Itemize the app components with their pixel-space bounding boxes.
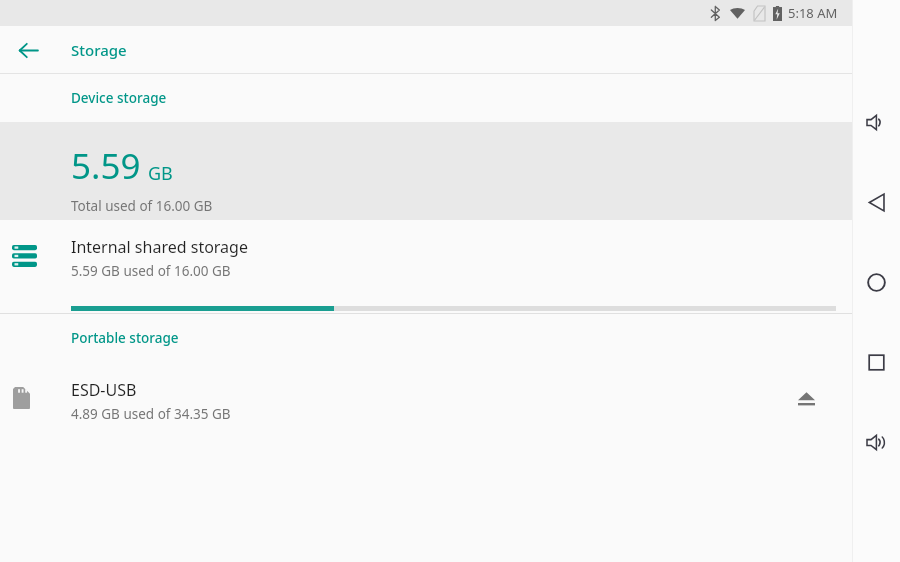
- button[interactable]: Back: [8, 30, 48, 70]
- button[interactable]: Back: [852, 180, 900, 224]
- button[interactable]: Internal shared storage: [0, 220, 852, 313]
- staticText: Internal shared storage: [71, 236, 248, 258]
- staticText: 4.89 GB used of 34.35 GB: [71, 405, 231, 423]
- staticText: GB: [148, 161, 173, 186]
- staticText: 5.59: [71, 142, 141, 190]
- staticText: 5:18 AM: [788, 4, 838, 22]
- staticText: Total used of 16.00 GB: [71, 197, 213, 215]
- button[interactable]: Volume up: [852, 420, 900, 464]
- button[interactable]: ESD-USB: [0, 362, 852, 434]
- staticText: Portable storage: [71, 329, 179, 347]
- staticText: Device storage: [71, 89, 167, 107]
- button[interactable]: Recents: [852, 340, 900, 384]
- staticText: Storage: [71, 40, 127, 60]
- button[interactable]: Home: [852, 260, 900, 304]
- button[interactable]: Volume down: [852, 100, 900, 144]
- button[interactable]: Eject: [784, 376, 828, 420]
- staticText: ESD-USB: [71, 379, 137, 401]
- staticText: 5.59 GB used of 16.00 GB: [71, 262, 231, 280]
